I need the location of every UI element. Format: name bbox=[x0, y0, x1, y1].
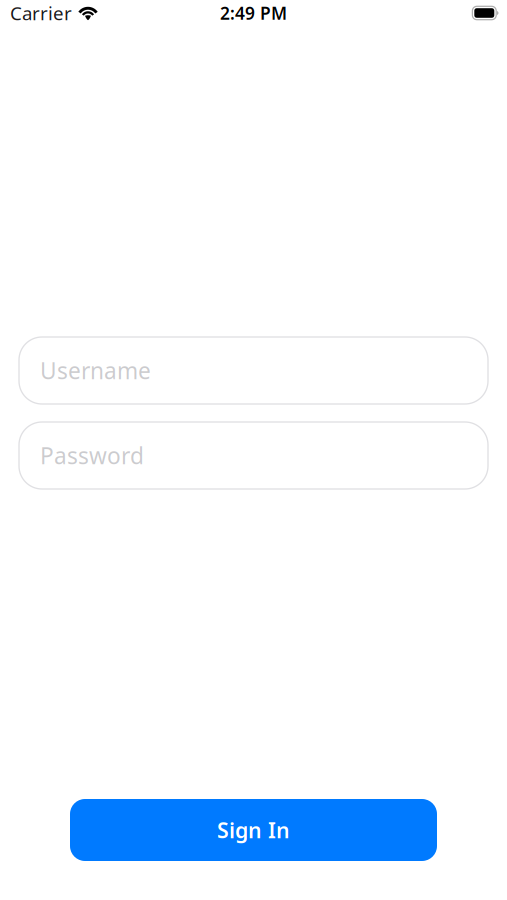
staticText: 2:49 PM bbox=[220, 1, 287, 24]
staticText: Carrier bbox=[10, 1, 72, 25]
button[interactable]: Sign In bbox=[70, 799, 437, 861]
staticText: Password bbox=[40, 440, 144, 470]
staticText: Sign In bbox=[217, 816, 290, 844]
button[interactable]: Password bbox=[19, 422, 488, 489]
button[interactable]: Username bbox=[19, 337, 488, 404]
staticText: Username bbox=[40, 355, 151, 385]
